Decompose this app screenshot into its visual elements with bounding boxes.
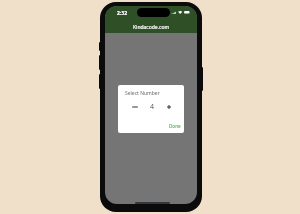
button[interactable]: Volume down <box>99 74 103 89</box>
button[interactable]: Increase <box>163 101 175 113</box>
staticText: Done <box>169 123 181 129</box>
staticText: 2:32 <box>117 10 127 17</box>
button[interactable]: Done <box>164 120 184 133</box>
button[interactable]: Power <box>199 67 203 91</box>
staticText: Kindacode.com <box>133 24 170 31</box>
staticText: Select Number <box>125 90 160 97</box>
button[interactable]: Volume up <box>99 55 103 70</box>
button[interactable]: Decrease <box>129 101 141 113</box>
other: Signal, Wi-Fi and battery <box>171 8 197 15</box>
staticText: 4 <box>150 102 155 112</box>
button[interactable]: Silent switch <box>99 42 103 51</box>
